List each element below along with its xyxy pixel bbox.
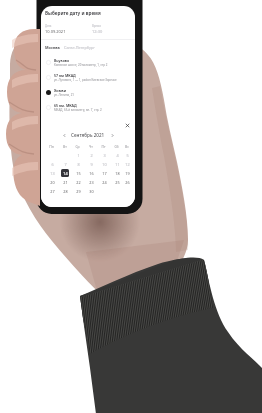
button[interactable]: Санкт-Петербург <box>64 45 95 50</box>
button[interactable]: Химки <box>41 85 135 100</box>
button[interactable]: 5 <box>123 151 131 159</box>
button[interactable]: 11 <box>113 160 121 168</box>
staticText: 14 <box>63 171 68 176</box>
staticText: Время <box>92 24 101 28</box>
staticText: 12:30 <box>92 29 103 34</box>
staticText: 8 <box>77 162 80 167</box>
staticText: 23 <box>89 180 94 185</box>
staticText: Вс <box>125 144 129 149</box>
staticText: 20 <box>50 180 55 185</box>
button[interactable]: 26 <box>123 178 131 186</box>
button[interactable]: 57 км МКАД <box>41 70 135 85</box>
staticText: 21 <box>63 180 68 185</box>
button[interactable]: 20 <box>48 178 56 186</box>
button[interactable]: 28 <box>61 187 69 195</box>
staticText: 17 <box>102 171 107 176</box>
button[interactable]: 19 <box>123 169 131 177</box>
staticText: Пт <box>101 144 106 149</box>
staticText: Химки <box>54 88 67 93</box>
staticText: МКАД, 65-й километр, вл. 7, стр. 2 <box>54 108 102 112</box>
button[interactable]: 22 <box>74 178 82 186</box>
staticText: 26 <box>125 180 130 185</box>
button[interactable]: 13 <box>48 169 56 177</box>
staticText: 7 <box>64 162 67 167</box>
button[interactable]: Внуково <box>41 55 135 70</box>
button[interactable]: 65 км. МКАД <box>41 100 135 115</box>
button[interactable]: 18 <box>113 169 121 177</box>
staticText: Выберите дату и время <box>45 10 101 16</box>
staticText: Вт <box>63 144 67 149</box>
staticText: 10 <box>102 162 107 167</box>
staticText: Сентябрь 2021 <box>71 132 105 138</box>
button[interactable]: 7 <box>61 160 69 168</box>
button[interactable]: 17 <box>100 169 108 177</box>
button[interactable]: 15 <box>74 169 82 177</box>
staticText: ул. Лугового, 1 — 1, район Киевское Заре… <box>54 78 117 82</box>
button[interactable]: 6 <box>48 160 56 168</box>
button[interactable]: 4 <box>113 151 121 159</box>
staticText: 24 <box>102 180 107 185</box>
button[interactable]: 16 <box>87 169 95 177</box>
button[interactable]: 21 <box>61 178 69 186</box>
button[interactable]: Закрыть <box>124 122 131 129</box>
staticText: Ср <box>75 144 80 149</box>
staticText: ул. Ленина, 21 <box>54 93 74 97</box>
staticText: Чт <box>89 144 93 149</box>
staticText: 4 <box>116 153 119 158</box>
staticText: 28 <box>63 189 68 194</box>
staticText: 19 <box>125 171 130 176</box>
staticText: 3 <box>103 153 106 158</box>
button[interactable]: 14 <box>61 169 69 177</box>
staticText: Киевское шоссе, 20 километр, 1, стр 2 <box>54 63 108 67</box>
staticText: 10.09.2021 <box>45 29 66 34</box>
button[interactable]: Москва <box>45 45 60 50</box>
staticText: 18 <box>115 171 120 176</box>
button[interactable]: 3 <box>100 151 108 159</box>
staticText: 65 км. МКАД <box>54 103 77 108</box>
staticText: Дата <box>45 24 52 28</box>
button[interactable]: 30 <box>87 187 95 195</box>
staticText: 29 <box>76 189 81 194</box>
button[interactable]: 27 <box>48 187 56 195</box>
button[interactable]: 1 <box>74 151 82 159</box>
button[interactable]: 10 <box>100 160 108 168</box>
staticText: 22 <box>76 180 81 185</box>
staticText: Сб <box>114 144 119 149</box>
button[interactable]: 12 <box>123 160 131 168</box>
staticText: 16 <box>89 171 94 176</box>
staticText: 12 <box>125 162 130 167</box>
staticText: 2 <box>90 153 93 158</box>
staticText: 6 <box>51 162 54 167</box>
button[interactable]: 29 <box>74 187 82 195</box>
staticText: 1 <box>77 153 80 158</box>
staticText: Внуково <box>54 58 70 63</box>
staticText: 11 <box>115 162 120 167</box>
staticText: 25 <box>115 180 120 185</box>
button[interactable]: 8 <box>74 160 82 168</box>
button[interactable]: 23 <box>87 178 95 186</box>
button[interactable]: 24 <box>100 178 108 186</box>
button[interactable]: Следующий месяц <box>108 131 116 139</box>
button[interactable]: 2 <box>87 151 95 159</box>
staticText: 13 <box>50 171 55 176</box>
staticText: 27 <box>50 189 55 194</box>
staticText: Пн <box>49 144 54 149</box>
staticText: 57 км МКАД <box>54 73 76 78</box>
button[interactable]: Щёлково <box>41 115 135 130</box>
staticText: 15 <box>76 171 81 176</box>
staticText: 9 <box>90 162 93 167</box>
button[interactable]: Предыдущий месяц <box>60 131 68 139</box>
staticText: 5 <box>126 153 129 158</box>
button[interactable]: 25 <box>113 178 121 186</box>
staticText: 30 <box>89 189 94 194</box>
button[interactable]: 9 <box>87 160 95 168</box>
